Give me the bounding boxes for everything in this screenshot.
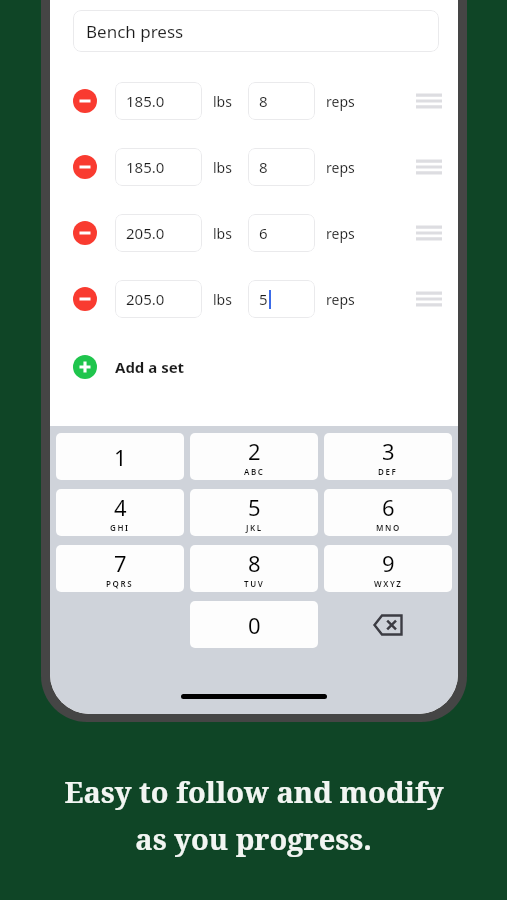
button[interactable]: 6 (248, 214, 315, 252)
staticText: 8 (248, 548, 261, 578)
staticText: WXYZ (374, 578, 403, 589)
staticText: lbs (213, 290, 232, 309)
button[interactable]: 1 (56, 433, 184, 480)
staticText: 6 (382, 492, 395, 522)
staticText: 8 (259, 157, 268, 177)
staticText: Easy to follow and modify (64, 772, 444, 811)
staticText: 6 (259, 223, 268, 243)
staticText: lbs (213, 92, 232, 111)
staticText: reps (326, 92, 355, 111)
staticText: JKL (246, 522, 263, 533)
button[interactable]: 9 (324, 545, 452, 592)
staticText: as you progress. (135, 819, 372, 858)
staticText: GHI (110, 522, 130, 533)
staticText: 5 (248, 492, 261, 522)
staticText: 7 (114, 548, 127, 578)
button[interactable]: 3 (324, 433, 452, 480)
button[interactable]: 205.0 (115, 280, 202, 318)
staticText: reps (326, 290, 355, 309)
button[interactable]: Remove set (73, 155, 97, 179)
staticText: Bench press (86, 20, 184, 43)
button[interactable]: 185.0 (115, 82, 202, 120)
button[interactable]: 5 (248, 280, 315, 318)
staticText: reps (326, 158, 355, 177)
button[interactable]: Bench press (73, 10, 439, 52)
button[interactable]: Add a set (50, 347, 458, 387)
button[interactable]: 205.0 (115, 214, 202, 252)
staticText: MNO (376, 522, 401, 533)
staticText: reps (326, 224, 355, 243)
button[interactable]: Remove set (50, 209, 458, 257)
staticText: 9 (382, 548, 395, 578)
staticText: 4 (114, 492, 127, 522)
button[interactable]: 7 (56, 545, 184, 592)
button[interactable]: Remove set (50, 275, 458, 323)
button[interactable]: 2 (190, 433, 318, 480)
button[interactable]: 8 (248, 148, 315, 186)
staticText: 185.0 (126, 157, 165, 177)
button[interactable]: Reorder set (416, 157, 442, 177)
staticText: lbs (213, 158, 232, 177)
staticText: Add a set (115, 357, 185, 377)
button[interactable]: Remove set (73, 89, 97, 113)
button[interactable]: 8 (248, 82, 315, 120)
button[interactable]: 0 (190, 601, 318, 648)
staticText: 3 (382, 436, 395, 466)
staticText: DEF (378, 466, 398, 477)
button[interactable]: Backspace (324, 601, 452, 648)
button[interactable]: 185.0 (115, 148, 202, 186)
button[interactable]: Reorder set (416, 91, 442, 111)
staticText: lbs (213, 224, 232, 243)
button[interactable]: 5 (190, 489, 318, 536)
staticText: 0 (248, 610, 261, 640)
button[interactable]: Remove set (73, 221, 97, 245)
staticText: ABC (244, 466, 265, 477)
button[interactable]: 8 (190, 545, 318, 592)
staticText: 2 (248, 436, 261, 466)
button[interactable]: 4 (56, 489, 184, 536)
staticText: 185.0 (126, 91, 165, 111)
button[interactable]: Reorder set (416, 289, 442, 309)
button[interactable]: 6 (324, 489, 452, 536)
button[interactable]: Remove set (50, 143, 458, 191)
staticText: 1 (114, 442, 127, 472)
staticText: TUV (244, 578, 265, 589)
button[interactable]: Remove set (50, 77, 458, 125)
staticText: 5 (259, 289, 268, 309)
staticText: 205.0 (126, 223, 165, 243)
staticText: PQRS (106, 578, 134, 589)
staticText: 8 (259, 91, 268, 111)
staticText: 205.0 (126, 289, 165, 309)
button[interactable]: Reorder set (416, 223, 442, 243)
button[interactable]: Remove set (73, 287, 97, 311)
